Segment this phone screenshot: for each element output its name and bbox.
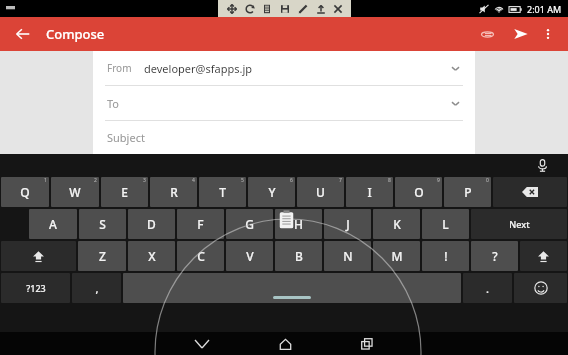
staticText: Q (20, 184, 30, 200)
button[interactable]: Upload (313, 1, 328, 16)
button[interactable]: B (275, 241, 322, 271)
button[interactable]: Close (330, 1, 345, 16)
button[interactable]: Move (224, 1, 239, 16)
button[interactable]: Clipboard (279, 210, 294, 229)
staticText: 9 (437, 177, 440, 184)
button[interactable]: H (275, 209, 322, 239)
button[interactable]: Y (248, 177, 295, 207)
button[interactable]: Backspace (493, 177, 567, 207)
button[interactable]: Send (508, 21, 534, 47)
staticText: Next (509, 218, 530, 230)
staticText: R (170, 184, 178, 200)
button[interactable]: Emoji (514, 273, 567, 303)
button[interactable]: , (72, 273, 121, 303)
button[interactable]: Space (123, 273, 461, 303)
button[interactable]: More options (538, 24, 558, 44)
button[interactable]: W (51, 177, 99, 207)
button[interactable]: F (177, 209, 224, 239)
button[interactable]: Shift (520, 241, 567, 271)
button[interactable]: E (101, 177, 148, 207)
staticText: 0 (486, 177, 489, 184)
staticText: From (107, 61, 132, 75)
staticText: ? (492, 248, 498, 264)
staticText: U (316, 184, 325, 200)
button[interactable]: Shift (1, 241, 76, 271)
button[interactable]: L (422, 209, 469, 239)
staticText: I (367, 184, 372, 200)
button[interactable]: Edit (295, 1, 310, 16)
button[interactable]: From (93, 51, 475, 85)
button[interactable]: D (128, 209, 175, 239)
button[interactable]: ? (471, 241, 518, 271)
staticText: 7 (339, 177, 342, 184)
button[interactable]: List (259, 1, 274, 16)
staticText: T (219, 184, 226, 200)
button[interactable]: Subject (93, 121, 475, 154)
button[interactable]: T (199, 177, 246, 207)
button[interactable]: Back (10, 21, 36, 47)
staticText: X (148, 248, 156, 264)
staticText: K (393, 216, 401, 232)
staticText: F (197, 216, 204, 232)
staticText: P (464, 184, 472, 200)
button[interactable]: C (177, 241, 224, 271)
staticText: D (147, 216, 156, 232)
staticText: W (69, 184, 81, 200)
staticText: developer@sfapps.jp (144, 61, 253, 76)
staticText: . (486, 281, 489, 296)
button[interactable]: I (346, 177, 393, 207)
staticText: 8 (388, 177, 391, 184)
button[interactable]: M (373, 241, 420, 271)
button[interactable]: Voice input (532, 155, 552, 175)
button[interactable]: Home (268, 333, 302, 355)
button[interactable]: ?123 (1, 273, 70, 303)
button[interactable]: P (444, 177, 491, 207)
staticText: Z (99, 248, 106, 264)
staticText: 1 (44, 177, 47, 184)
button[interactable]: A (29, 209, 77, 239)
staticText: To (107, 96, 120, 111)
button[interactable]: K (373, 209, 420, 239)
staticText: H (294, 216, 303, 232)
staticText: G (245, 216, 254, 232)
staticText: 3 (143, 177, 146, 184)
staticText: ! (444, 248, 448, 264)
button[interactable]: R (150, 177, 197, 207)
button[interactable]: Attach (474, 21, 500, 47)
button[interactable]: Hide keyboard (185, 333, 219, 355)
button[interactable]: X (128, 241, 175, 271)
staticText: C (197, 248, 205, 264)
button[interactable]: O (395, 177, 442, 207)
button[interactable]: To (93, 86, 475, 120)
staticText: 2:01 AM (527, 3, 562, 15)
button[interactable]: Q (1, 177, 49, 207)
staticText: N (343, 248, 353, 264)
button[interactable]: Refresh (242, 1, 257, 16)
button[interactable]: Next (471, 209, 567, 239)
button[interactable]: N (324, 241, 371, 271)
button[interactable]: U (297, 177, 344, 207)
staticText: E (121, 184, 128, 200)
button[interactable]: ! (422, 241, 469, 271)
button[interactable]: G (226, 209, 273, 239)
staticText: 4 (192, 177, 195, 184)
button[interactable]: Recents (350, 333, 384, 355)
button[interactable]: . (463, 273, 512, 303)
button[interactable]: J (324, 209, 371, 239)
staticText: V (246, 248, 254, 264)
staticText: Subject (107, 130, 145, 145)
staticText: 2 (94, 177, 97, 184)
staticText: Compose (46, 25, 105, 43)
staticText: O (414, 184, 424, 200)
button[interactable]: V (226, 241, 273, 271)
staticText: 6 (290, 177, 293, 184)
staticText: B (295, 248, 303, 264)
button[interactable]: S (79, 209, 126, 239)
button[interactable]: Z (78, 241, 126, 271)
staticText: J (346, 216, 350, 232)
button[interactable]: Save (277, 1, 292, 16)
staticText: S (99, 216, 106, 232)
staticText: A (49, 216, 57, 232)
staticText: L (442, 216, 449, 232)
staticText: , (95, 281, 99, 296)
